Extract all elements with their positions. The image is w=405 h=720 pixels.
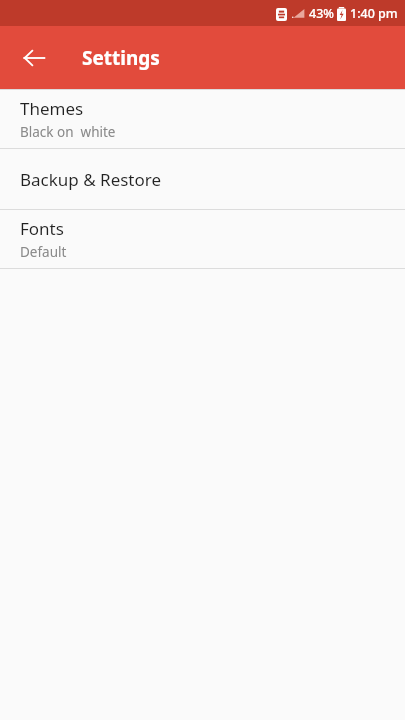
staticText: Backup & Restore bbox=[20, 168, 162, 191]
staticText: Themes bbox=[20, 97, 84, 120]
staticText: 43% bbox=[309, 5, 334, 22]
button[interactable]: Fonts bbox=[0, 210, 405, 268]
staticText: Settings bbox=[82, 45, 160, 71]
staticText: Fonts bbox=[20, 217, 64, 240]
button[interactable]: Backup & Restore bbox=[0, 149, 405, 209]
staticText: Default bbox=[20, 243, 67, 261]
button[interactable]: Back bbox=[10, 34, 58, 82]
staticText: 1:40 pm bbox=[350, 5, 398, 22]
button[interactable]: Themes bbox=[0, 90, 405, 148]
staticText: Black on white bbox=[20, 123, 116, 141]
